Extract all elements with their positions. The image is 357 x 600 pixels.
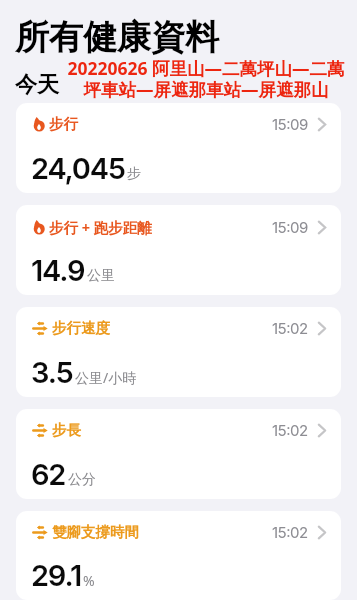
staticText: 15:02 (272, 319, 308, 337)
button[interactable]: 步行 + 跑步距離 (16, 205, 341, 295)
staticText: 公里/小時 (75, 368, 137, 387)
staticText: 62 (31, 457, 66, 492)
staticText: 14.9 (31, 253, 85, 288)
staticText: 公里 (87, 267, 115, 285)
staticText: 步行 (49, 115, 78, 133)
staticText: 3.5 (31, 355, 73, 390)
staticText: 步 (127, 165, 141, 183)
staticText: 24,045 (31, 151, 125, 186)
staticText: 15:09 (272, 115, 308, 133)
staticText: 今天 (15, 71, 59, 99)
staticText: 15:02 (272, 523, 308, 541)
staticText: % (83, 571, 95, 590)
staticText: 步長 (52, 421, 81, 439)
staticText: 步行 + 跑步距離 (49, 217, 152, 237)
staticText: 所有健康資料 (15, 16, 219, 59)
staticText: 20220626 阿里山―二萬坪山―二萬 坪車站―屏遮那車站―屏遮那山 (62, 56, 350, 101)
button[interactable]: 雙腳支撐時間 (16, 511, 341, 600)
staticText: 步行速度 (52, 319, 110, 337)
staticText: 15:09 (272, 218, 308, 236)
staticText: 雙腳支撐時間 (52, 523, 139, 541)
button[interactable]: 步長 (16, 409, 341, 499)
staticText: 29.1 (31, 558, 81, 593)
staticText: 15:02 (272, 421, 308, 439)
button[interactable]: 步行速度 (16, 307, 341, 397)
button[interactable]: 步行 (16, 103, 341, 193)
staticText: 公分 (68, 471, 96, 489)
